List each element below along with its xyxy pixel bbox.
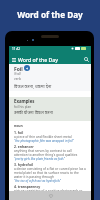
button[interactable]: Play pronunciation bbox=[24, 65, 30, 71]
button[interactable]: Add to favourites bbox=[47, 192, 54, 199]
staticText: noun bbox=[14, 123, 23, 128]
staticText: "the photographic film was wrapped in fo… bbox=[14, 139, 74, 143]
staticText: "pretty girls like plain friends as foil… bbox=[14, 157, 65, 161]
staticText: verb bbox=[14, 76, 21, 80]
staticText: 2. enhancer bbox=[14, 144, 34, 149]
staticText: 1. foil bbox=[14, 130, 24, 135]
staticText: a piece of thin and flexible sheet metal bbox=[14, 135, 72, 139]
staticText: picture consisting of a positive photogr… bbox=[14, 189, 83, 193]
staticText: "the toe of a fish act as hydrofoils" bbox=[14, 179, 61, 183]
staticText: Examples bbox=[14, 98, 35, 104]
staticText: Word of the Day bbox=[0, 9, 100, 20]
staticText: उसकी योजना विफल करना bbox=[14, 110, 53, 115]
staticText: विफल करना, चकमा देना bbox=[14, 84, 52, 90]
staticText: Foil bbox=[14, 66, 23, 73]
staticText: foil his plan bbox=[14, 105, 32, 109]
staticText: a device consisting of a flat or curved … bbox=[14, 167, 86, 179]
staticText: 3. hydrofoil bbox=[14, 162, 34, 167]
staticText: Word of the Day bbox=[18, 56, 59, 63]
staticText: 4. transparency bbox=[14, 184, 41, 189]
button[interactable]: Search bbox=[81, 54, 91, 64]
staticText: 11:42 bbox=[12, 47, 21, 51]
staticText: anything that serves by contrast to call… bbox=[14, 149, 86, 157]
button[interactable]: Open navigation menu bbox=[9, 55, 18, 64]
staticText: /fɔɪl/ bbox=[14, 71, 22, 75]
